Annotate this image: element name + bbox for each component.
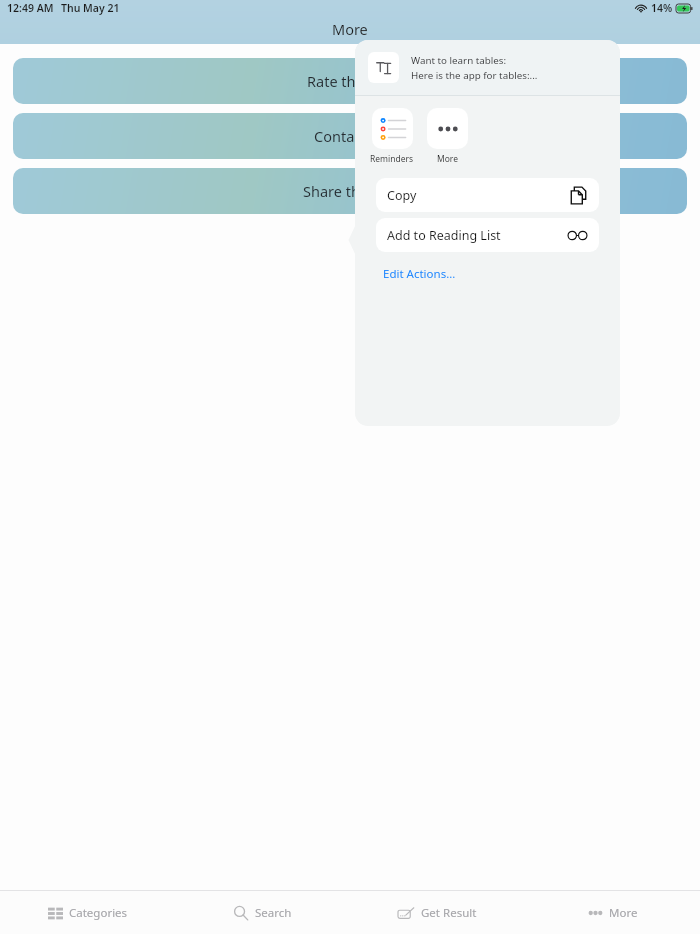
staticText: More — [332, 19, 368, 39]
staticText: Reminders — [370, 153, 414, 165]
button[interactable]: Add to Reading List — [376, 218, 599, 252]
staticText: Contact us — [314, 126, 387, 146]
staticText: Categories — [69, 905, 128, 921]
button[interactable]: More — [427, 108, 468, 165]
button[interactable]: Rate the app — [13, 58, 687, 104]
staticText: Share the app — [303, 181, 398, 201]
staticText: Search — [255, 905, 292, 921]
button[interactable]: Categories — [0, 891, 175, 934]
button[interactable]: More — [525, 891, 700, 934]
button[interactable]: Search — [175, 891, 350, 934]
staticText: More — [437, 153, 458, 165]
staticText: Here is the app for tables:... — [411, 69, 538, 82]
button[interactable]: Reminders — [370, 108, 414, 165]
staticText: Want to learn tables: — [411, 54, 507, 67]
button[interactable]: Share the app — [13, 168, 687, 214]
staticText: Copy — [387, 187, 417, 204]
button[interactable]: Want to learn tables: — [355, 40, 620, 95]
staticText: Thu May 21 — [61, 1, 120, 15]
button[interactable]: Edit Actions... — [355, 261, 620, 287]
staticText: Rate the app — [307, 71, 394, 91]
staticText: Edit Actions... — [383, 266, 456, 282]
staticText: 14% — [651, 1, 673, 15]
staticText: 12:49 AM — [7, 1, 54, 15]
staticText: Get Result — [421, 905, 477, 921]
button[interactable]: Contact us — [13, 113, 687, 159]
staticText: Add to Reading List — [387, 227, 501, 244]
button[interactable]: Copy — [376, 178, 599, 212]
button[interactable]: Get Result — [350, 891, 525, 934]
staticText: More — [609, 905, 638, 921]
